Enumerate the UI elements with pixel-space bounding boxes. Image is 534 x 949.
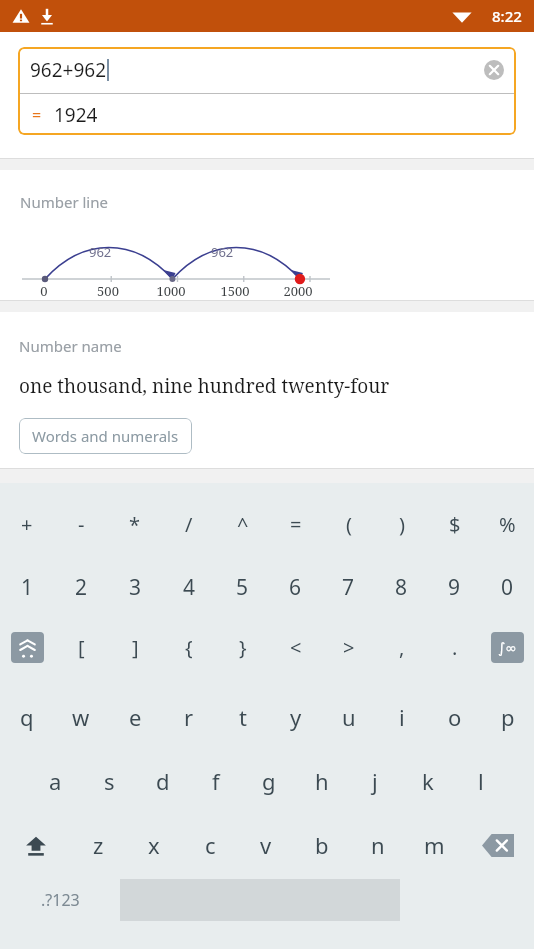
staticText: k	[422, 766, 434, 796]
button[interactable]: c	[182, 821, 238, 869]
button[interactable]: k	[401, 757, 454, 805]
button[interactable]: Shift	[0, 821, 71, 869]
button[interactable]: {	[162, 623, 216, 671]
staticText: u	[342, 702, 356, 732]
button[interactable]: h	[295, 757, 348, 805]
staticText: <	[290, 634, 302, 661]
staticText: 5	[236, 573, 249, 602]
button[interactable]: 0	[481, 563, 534, 611]
staticText: x	[148, 830, 160, 860]
button[interactable]: +	[0, 499, 54, 549]
button[interactable]: u	[322, 693, 375, 741]
button[interactable]: p	[481, 693, 534, 741]
button[interactable]: f	[189, 757, 242, 805]
staticText: h	[315, 766, 329, 796]
button[interactable]: <	[269, 623, 322, 671]
button[interactable]: 5	[216, 563, 269, 611]
button[interactable]: 1	[0, 563, 54, 611]
button[interactable]: z	[71, 821, 126, 869]
staticText: c	[205, 830, 216, 860]
staticText: 6	[289, 573, 302, 602]
staticText: j	[372, 766, 378, 796]
button[interactable]: 7	[322, 563, 375, 611]
button[interactable]: =	[18, 94, 516, 135]
staticText: =	[32, 104, 42, 126]
button[interactable]: i	[375, 693, 428, 741]
button[interactable]: ]	[108, 623, 162, 671]
button[interactable]: 8	[375, 563, 428, 611]
staticText: l	[478, 766, 484, 796]
staticText: 500	[83, 282, 133, 300]
button[interactable]: Math symbols	[481, 623, 534, 671]
staticText: 962	[89, 243, 112, 261]
button[interactable]: l	[454, 757, 507, 805]
button[interactable]: t	[216, 693, 269, 741]
button[interactable]: 4	[162, 563, 216, 611]
button[interactable]: ^	[216, 499, 269, 549]
button[interactable]: d	[136, 757, 189, 805]
button[interactable]: 3	[108, 563, 162, 611]
staticText: ^	[237, 511, 249, 538]
button[interactable]: a	[28, 757, 82, 805]
staticText: t	[239, 702, 247, 732]
staticText: w	[72, 702, 90, 732]
staticText: i	[399, 702, 405, 732]
button[interactable]: n	[350, 821, 406, 869]
staticText: ∫∞	[498, 640, 517, 656]
staticText: 962+962	[30, 57, 107, 83]
staticText: 0	[19, 282, 69, 300]
button[interactable]: /	[162, 499, 216, 549]
button[interactable]: [	[54, 623, 108, 671]
button[interactable]: )	[375, 499, 428, 549]
button[interactable]: (	[322, 499, 375, 549]
staticText: one thousand, nine hundred twenty-four	[19, 373, 390, 399]
staticText: 0	[501, 573, 514, 602]
staticText: d	[156, 766, 170, 796]
button[interactable]: -	[54, 499, 108, 549]
staticText: g	[262, 766, 276, 796]
button[interactable]: .?123	[0, 879, 120, 921]
staticText: (	[346, 511, 352, 538]
button[interactable]: v	[238, 821, 294, 869]
button[interactable]: r	[162, 693, 216, 741]
button[interactable]: 9	[428, 563, 481, 611]
button[interactable]: w	[54, 693, 108, 741]
button[interactable]: Backspace	[462, 821, 534, 869]
button[interactable]: e	[108, 693, 162, 741]
button[interactable]: ,	[375, 623, 428, 671]
staticText: y	[290, 702, 302, 732]
button[interactable]: Words and numerals	[19, 418, 192, 454]
button[interactable]: j	[348, 757, 401, 805]
button[interactable]: b	[294, 821, 350, 869]
staticText: q	[20, 702, 34, 732]
button[interactable]: >	[322, 623, 375, 671]
staticText: .?123	[41, 889, 80, 911]
button[interactable]: y	[269, 693, 322, 741]
button[interactable]: .	[428, 623, 481, 671]
staticText: p	[501, 702, 515, 732]
button[interactable]: g	[242, 757, 295, 805]
staticText: +	[21, 511, 33, 538]
button[interactable]: %	[481, 499, 534, 549]
staticText: 9	[448, 573, 461, 602]
staticText: =	[290, 511, 302, 538]
button[interactable]: =	[269, 499, 322, 549]
button[interactable]: q	[0, 693, 54, 741]
staticText: 2	[75, 573, 88, 602]
button[interactable]: 962+962	[18, 47, 516, 93]
button[interactable]: x	[126, 821, 182, 869]
button[interactable]: }	[216, 623, 269, 671]
button[interactable]: $	[428, 499, 481, 549]
button[interactable]: *	[108, 499, 162, 549]
staticText: Number line	[20, 192, 108, 212]
button[interactable]: More symbols	[0, 623, 54, 671]
staticText: -	[78, 511, 85, 538]
staticText: Number name	[19, 336, 122, 356]
button[interactable]: o	[428, 693, 481, 741]
button[interactable]: m	[406, 821, 462, 869]
button[interactable]: Clear	[484, 60, 504, 80]
button[interactable]: s	[82, 757, 136, 805]
button[interactable]: 6	[269, 563, 322, 611]
button[interactable]: 2	[54, 563, 108, 611]
